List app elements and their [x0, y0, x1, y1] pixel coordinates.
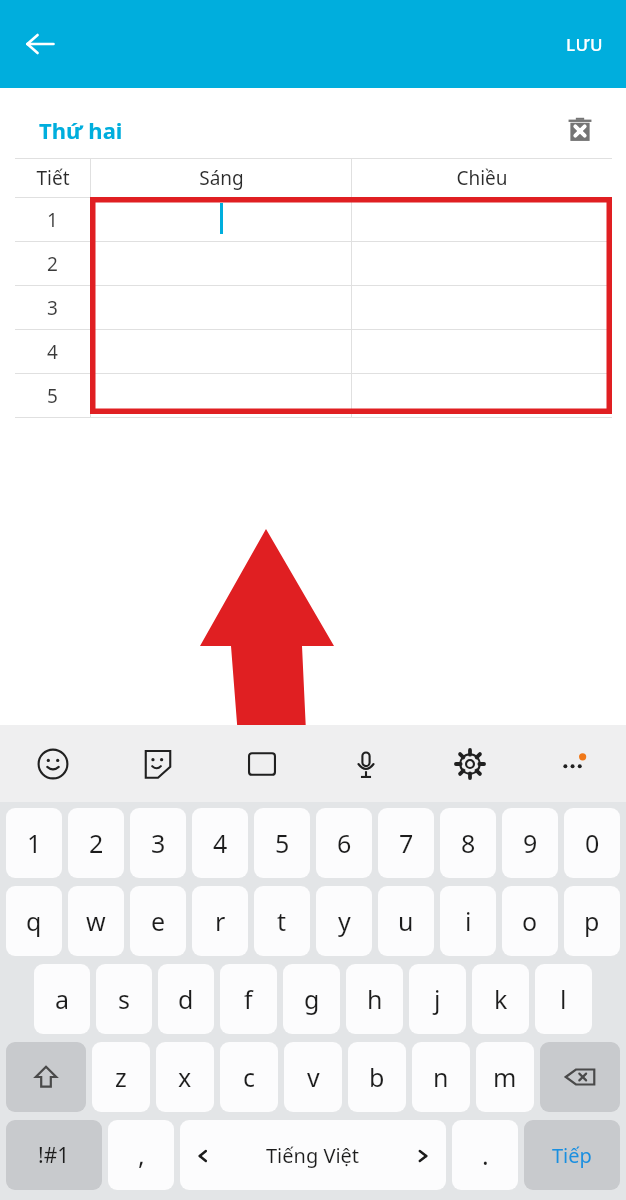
- button[interactable]: [91, 198, 351, 241]
- button[interactable]: v: [284, 1042, 342, 1112]
- button[interactable]: y: [316, 886, 372, 956]
- button[interactable]: Delete day: [558, 108, 602, 152]
- button[interactable]: p: [564, 886, 620, 956]
- button[interactable]: w: [68, 886, 124, 956]
- button[interactable]: Emoji: [0, 725, 105, 802]
- button[interactable]: 1: [6, 808, 62, 878]
- button[interactable]: Tiếp: [524, 1120, 620, 1190]
- staticText: u: [398, 904, 414, 938]
- button[interactable]: [91, 286, 351, 329]
- button[interactable]: j: [409, 964, 466, 1034]
- staticText: q: [26, 904, 42, 938]
- button[interactable]: m: [476, 1042, 534, 1112]
- button[interactable]: e: [130, 886, 186, 956]
- button[interactable]: z: [92, 1042, 150, 1112]
- staticText: e: [151, 904, 166, 938]
- staticText: t: [277, 904, 287, 938]
- button[interactable]: r: [192, 886, 248, 956]
- button[interactable]: 8: [440, 808, 496, 878]
- staticText: LƯU: [566, 33, 604, 56]
- button[interactable]: 6: [316, 808, 372, 878]
- button[interactable]: h: [346, 964, 403, 1034]
- button[interactable]: l: [535, 964, 592, 1034]
- button[interactable]: [91, 330, 351, 373]
- button[interactable]: [352, 374, 612, 417]
- staticText: x: [178, 1060, 192, 1094]
- staticText: r: [215, 904, 226, 938]
- button[interactable]: 4: [192, 808, 248, 878]
- button[interactable]: Settings: [418, 725, 522, 802]
- button[interactable]: 9: [502, 808, 558, 878]
- button[interactable]: [352, 330, 612, 373]
- staticText: d: [178, 982, 194, 1016]
- staticText: 3: [151, 826, 166, 860]
- staticText: g: [304, 982, 320, 1016]
- button[interactable]: .: [452, 1120, 518, 1190]
- button[interactable]: c: [220, 1042, 278, 1112]
- staticText: 0: [585, 826, 600, 860]
- button[interactable]: Back: [12, 16, 68, 72]
- button[interactable]: u: [378, 886, 434, 956]
- button[interactable]: [91, 374, 351, 417]
- button[interactable]: b: [348, 1042, 406, 1112]
- staticText: a: [55, 982, 70, 1016]
- staticText: p: [584, 904, 600, 938]
- button[interactable]: Stickers: [105, 725, 210, 802]
- button[interactable]: More options: [522, 725, 626, 802]
- button[interactable]: x: [156, 1042, 214, 1112]
- button[interactable]: 5: [254, 808, 310, 878]
- button[interactable]: n: [412, 1042, 470, 1112]
- staticText: 9: [523, 826, 538, 860]
- staticText: !#1: [38, 1141, 70, 1170]
- staticText: Sáng: [199, 165, 244, 191]
- staticText: 2: [47, 251, 58, 277]
- button[interactable]: !#1: [6, 1120, 102, 1190]
- button[interactable]: GIF: [210, 725, 314, 802]
- button[interactable]: Backspace: [540, 1042, 620, 1112]
- staticText: 4: [213, 826, 228, 860]
- staticText: v: [307, 1060, 320, 1094]
- button[interactable]: Voice input: [314, 725, 418, 802]
- button[interactable]: g: [283, 964, 340, 1034]
- button[interactable]: k: [472, 964, 529, 1034]
- button[interactable]: 0: [564, 808, 620, 878]
- button[interactable]: 2: [68, 808, 124, 878]
- staticText: 2: [89, 826, 104, 860]
- button[interactable]: 7: [378, 808, 434, 878]
- staticText: 3: [47, 295, 58, 321]
- button[interactable]: d: [158, 964, 214, 1034]
- staticText: w: [86, 904, 106, 938]
- button[interactable]: o: [502, 886, 558, 956]
- button[interactable]: a: [34, 964, 90, 1034]
- staticText: i: [465, 904, 472, 938]
- button[interactable]: [352, 198, 612, 241]
- button[interactable]: 3: [130, 808, 186, 878]
- staticText: l: [560, 982, 567, 1016]
- staticText: y: [338, 904, 351, 938]
- button[interactable]: Shift: [6, 1042, 86, 1112]
- button[interactable]: q: [6, 886, 62, 956]
- button[interactable]: LƯU: [550, 23, 620, 66]
- staticText: 5: [47, 383, 58, 409]
- button[interactable]: [352, 286, 612, 329]
- button[interactable]: [352, 242, 612, 285]
- button[interactable]: i: [440, 886, 496, 956]
- button[interactable]: ,: [108, 1120, 174, 1190]
- button[interactable]: [91, 242, 351, 285]
- button[interactable]: t: [254, 886, 310, 956]
- staticText: c: [243, 1060, 256, 1094]
- staticText: m: [493, 1060, 517, 1094]
- button[interactable]: f: [220, 964, 277, 1034]
- staticText: s: [118, 982, 130, 1016]
- staticText: 5: [275, 826, 290, 860]
- button[interactable]: Tiếng Việt: [180, 1120, 446, 1190]
- staticText: j: [434, 982, 441, 1016]
- staticText: 1: [27, 826, 42, 860]
- staticText: n: [433, 1060, 449, 1094]
- staticText: Tiếng Việt: [266, 1142, 360, 1169]
- staticText: k: [494, 982, 508, 1016]
- button[interactable]: s: [96, 964, 152, 1034]
- staticText: 4: [47, 339, 58, 365]
- staticText: h: [367, 982, 383, 1016]
- staticText: z: [115, 1060, 127, 1094]
